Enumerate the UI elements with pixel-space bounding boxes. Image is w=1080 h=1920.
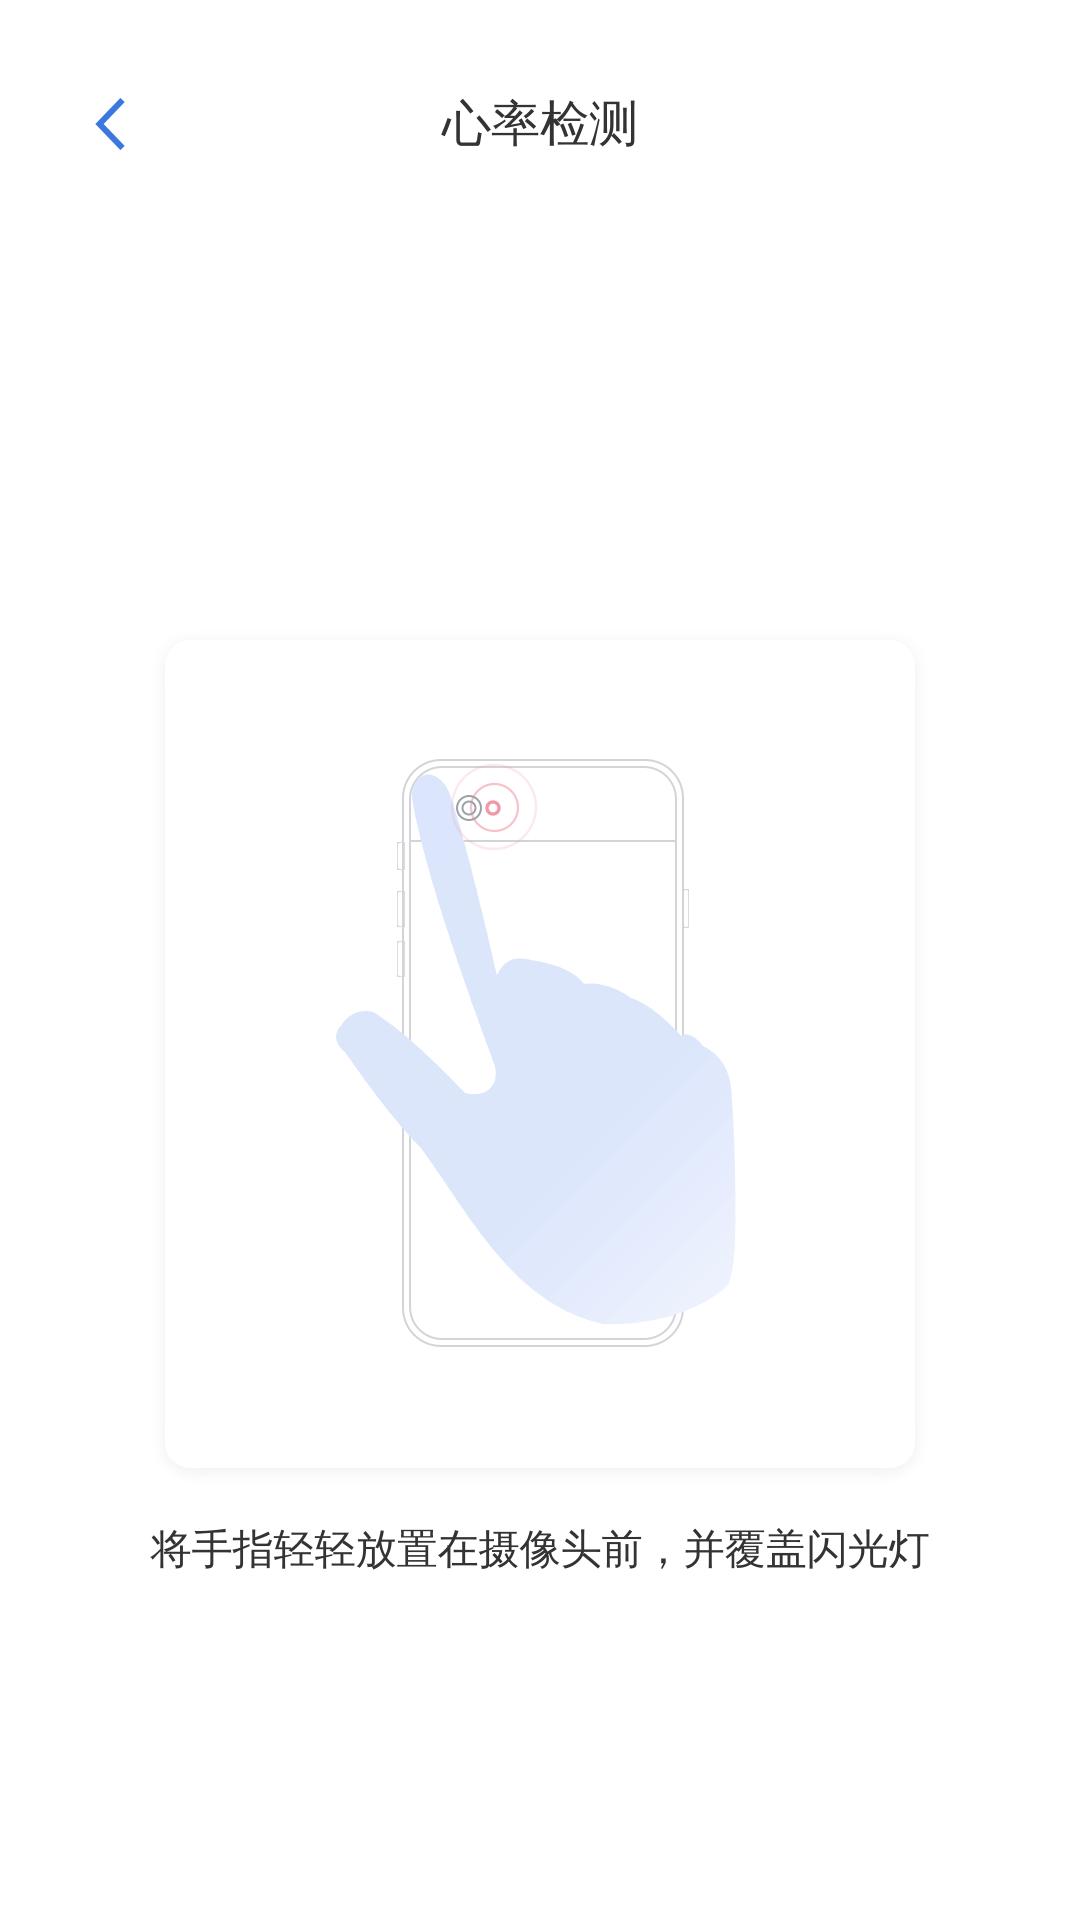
staticText: 心率检测 <box>442 94 638 154</box>
button[interactable]: Back <box>56 69 166 179</box>
staticText: 将手指轻轻放置在摄像头前，并覆盖闪光灯 <box>150 1524 929 1575</box>
